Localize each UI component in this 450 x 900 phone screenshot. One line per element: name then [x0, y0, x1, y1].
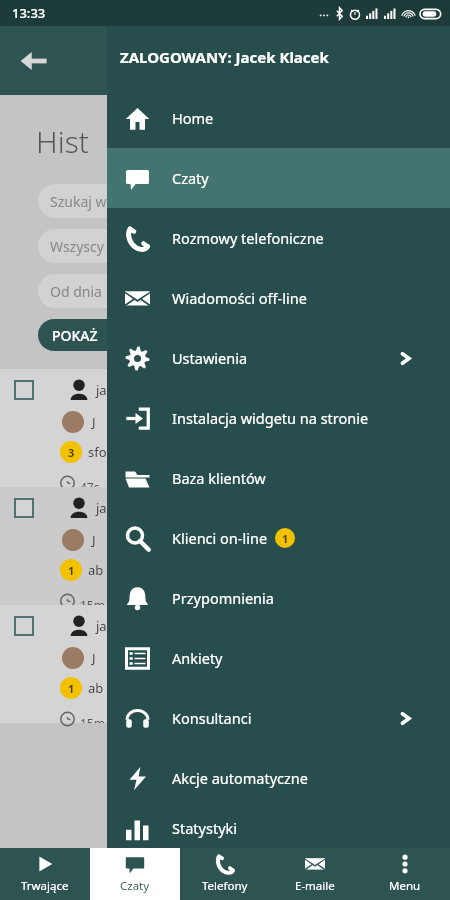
- staticText: 3: [68, 445, 75, 460]
- staticText: Ankiety: [172, 648, 223, 668]
- button[interactable]: Konsultanci: [107, 688, 450, 748]
- button[interactable]: Rozmowy telefoniczne: [107, 208, 450, 268]
- staticText: Wiadomości off-line: [172, 288, 307, 308]
- staticText: 15m: [80, 597, 105, 605]
- staticText: POKAŻ: [52, 326, 98, 345]
- button[interactable]: E-maile: [270, 848, 360, 900]
- staticText: Konsultanci: [172, 708, 252, 728]
- staticText: ab: [88, 679, 104, 697]
- staticText: 1: [282, 531, 289, 546]
- staticText: Telefony: [202, 878, 248, 894]
- staticText: Home: [172, 108, 214, 128]
- button[interactable]: Baza klientów: [107, 448, 450, 508]
- button[interactable]: Ankiety: [107, 628, 450, 688]
- staticText: Instalacja widgetu na stronie: [172, 408, 369, 428]
- button[interactable]: Wiadomości off-line: [107, 268, 450, 328]
- staticText: sfo: [88, 443, 107, 461]
- staticText: 15m: [80, 715, 105, 723]
- staticText: Rozmowy telefoniczne: [172, 228, 324, 248]
- staticText: J: [92, 531, 96, 549]
- staticText: Ustawienia: [172, 348, 248, 368]
- staticText: ja: [96, 499, 107, 517]
- staticText: 1: [68, 681, 75, 696]
- staticText: Wszyscy: [50, 237, 104, 256]
- staticText: ja: [96, 617, 107, 635]
- staticText: ab: [88, 561, 104, 579]
- staticText: ZALOGOWANY: Jacek Klacek: [120, 47, 329, 67]
- staticText: J: [92, 413, 96, 431]
- staticText: Baza klientów: [172, 468, 266, 488]
- staticText: Hist: [36, 121, 89, 162]
- staticText: Trwające: [21, 878, 69, 894]
- button[interactable]: Ustawienia: [107, 328, 450, 388]
- staticText: Szukaj w: [50, 192, 107, 211]
- button[interactable]: Przypomnienia: [107, 568, 450, 628]
- button[interactable]: Statystyki: [107, 808, 450, 848]
- button[interactable]: Czaty: [107, 148, 450, 208]
- staticText: Akcje automatyczne: [172, 768, 308, 788]
- button[interactable]: Czaty: [90, 848, 180, 900]
- staticText: J: [92, 649, 96, 667]
- staticText: 13:33: [12, 4, 46, 22]
- button[interactable]: Telefony: [180, 848, 270, 900]
- button[interactable]: Back: [12, 39, 56, 83]
- button[interactable]: Instalacja widgetu na stronie: [107, 388, 450, 448]
- button[interactable]: Akcje automatyczne: [107, 748, 450, 808]
- button[interactable]: Home: [107, 88, 450, 148]
- staticText: Statystyki: [172, 818, 238, 838]
- staticText: E-maile: [295, 878, 335, 894]
- staticText: Klienci on-line: [172, 528, 268, 548]
- staticText: Czaty: [172, 168, 209, 188]
- staticText: Menu: [389, 878, 421, 894]
- staticText: ja: [96, 381, 107, 399]
- button[interactable]: Trwające: [0, 848, 90, 900]
- staticText: Od dnia: [50, 282, 102, 301]
- staticText: Czaty: [120, 878, 150, 894]
- staticText: 1: [68, 563, 75, 578]
- staticText: Przypomnienia: [172, 588, 274, 608]
- staticText: 47s: [80, 479, 100, 487]
- button[interactable]: Klienci on-line: [107, 508, 450, 568]
- button[interactable]: Menu: [360, 848, 450, 900]
